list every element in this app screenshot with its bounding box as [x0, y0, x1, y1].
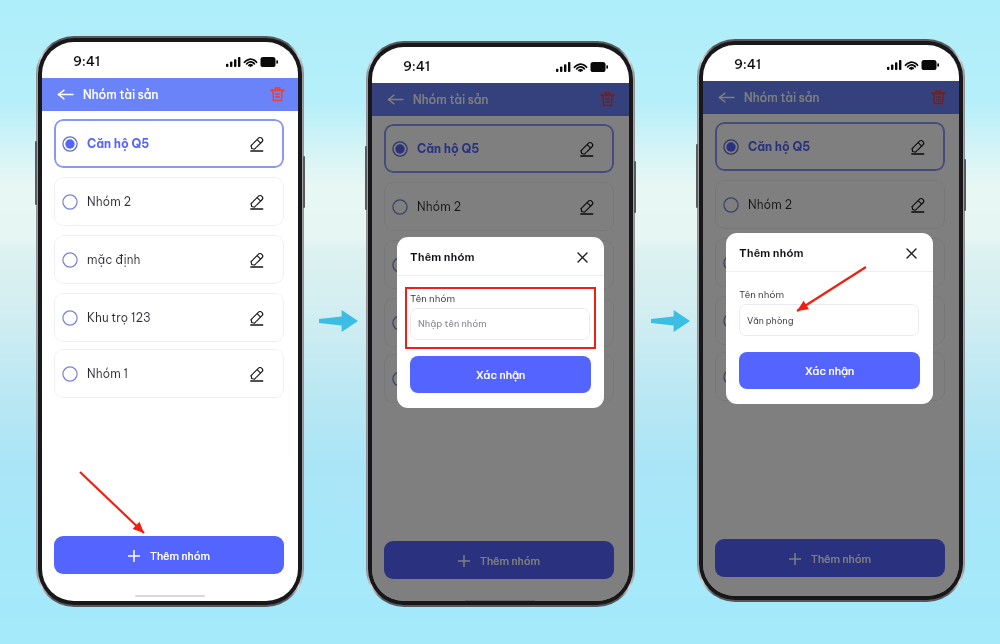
- button[interactable]: Delete: [596, 88, 618, 110]
- button[interactable]: Back: [55, 84, 76, 105]
- staticText: Nhóm tài sản: [83, 87, 159, 102]
- staticText: Nhóm tài sản: [413, 92, 489, 107]
- button[interactable]: Edit: [908, 367, 928, 387]
- button[interactable]: Xác nhận: [410, 356, 591, 393]
- button[interactable]: Nhóm 2: [54, 177, 284, 226]
- button[interactable]: Thêm nhóm: [54, 536, 284, 574]
- button[interactable]: Edit: [908, 195, 928, 215]
- button[interactable]: Thêm nhóm: [384, 541, 614, 579]
- button[interactable]: Delete: [927, 86, 949, 108]
- staticText: Căn hộ Q5: [87, 136, 150, 151]
- button[interactable]: Edit: [577, 139, 597, 159]
- staticText: Xác nhận: [476, 368, 526, 382]
- button[interactable]: Delete: [266, 83, 288, 105]
- button[interactable]: Nhập tên nhóm: [410, 308, 590, 340]
- staticText: Thêm nhóm: [739, 246, 804, 260]
- button[interactable]: Khu trọ 123: [384, 298, 614, 347]
- staticText: Nhóm 2: [417, 199, 462, 214]
- button[interactable]: Edit: [247, 134, 267, 154]
- button[interactable]: Nhóm 1: [715, 352, 945, 401]
- staticText: Nhóm 2: [748, 197, 793, 212]
- button[interactable]: Edit: [247, 308, 267, 328]
- staticText: Căn hộ Q5: [417, 141, 480, 156]
- button[interactable]: Back: [385, 89, 406, 110]
- staticText: Khu trọ 123: [417, 315, 481, 330]
- button[interactable]: Close: [573, 248, 592, 267]
- button[interactable]: Thêm nhóm: [715, 539, 945, 577]
- button[interactable]: Căn hộ Q5: [384, 124, 614, 173]
- staticText: mặc định: [748, 255, 802, 270]
- button[interactable]: Nhóm 1: [384, 354, 614, 403]
- staticText: 9:41: [403, 58, 431, 74]
- staticText: 9:41: [734, 56, 762, 72]
- staticText: Tên nhóm: [739, 288, 785, 300]
- staticText: Nhóm 1: [87, 366, 128, 381]
- staticText: Nhập tên nhóm: [418, 318, 487, 330]
- button[interactable]: Back: [716, 87, 737, 108]
- button[interactable]: Edit: [908, 311, 928, 331]
- staticText: Thêm nhóm: [410, 250, 475, 264]
- staticText: Thêm nhóm: [150, 549, 211, 562]
- staticText: Căn hộ Q5: [748, 139, 811, 154]
- button[interactable]: Edit: [908, 253, 928, 273]
- button[interactable]: Edit: [908, 137, 928, 157]
- staticText: Thêm nhóm: [480, 554, 541, 567]
- staticText: Tên nhóm: [410, 292, 456, 304]
- staticText: Nhóm tài sản: [744, 90, 820, 105]
- button[interactable]: Edit: [577, 313, 597, 333]
- button[interactable]: Căn hộ Q5: [54, 119, 284, 168]
- staticText: 9:41: [73, 53, 101, 69]
- button[interactable]: Xác nhận: [739, 352, 920, 389]
- staticText: Khu trọ 123: [87, 310, 151, 325]
- button[interactable]: Edit: [577, 197, 597, 217]
- staticText: Xác nhận: [805, 364, 855, 378]
- button[interactable]: Khu trọ 123: [54, 293, 284, 342]
- button[interactable]: mặc định: [715, 238, 945, 287]
- button[interactable]: Nhóm 1: [54, 349, 284, 398]
- button[interactable]: Edit: [247, 364, 267, 384]
- button[interactable]: Edit: [247, 250, 267, 270]
- button[interactable]: Nhóm 2: [384, 182, 614, 231]
- staticText: mặc định: [417, 257, 471, 272]
- button[interactable]: mặc định: [384, 240, 614, 289]
- button[interactable]: Căn hộ Q5: [715, 122, 945, 171]
- button[interactable]: mặc định: [54, 235, 284, 284]
- button[interactable]: Close: [902, 244, 921, 263]
- staticText: mặc định: [87, 252, 141, 267]
- staticText: Thêm nhóm: [811, 552, 872, 565]
- staticText: Nhóm 2: [87, 194, 132, 209]
- button[interactable]: Edit: [577, 369, 597, 389]
- button[interactable]: Nhóm 2: [715, 180, 945, 229]
- button[interactable]: Văn phòng: [739, 304, 919, 336]
- button[interactable]: Edit: [577, 255, 597, 275]
- button[interactable]: Khu trọ 123: [715, 296, 945, 345]
- staticText: Văn phòng: [747, 315, 794, 326]
- staticText: Khu trọ 123: [748, 313, 812, 328]
- button[interactable]: Edit: [247, 192, 267, 212]
